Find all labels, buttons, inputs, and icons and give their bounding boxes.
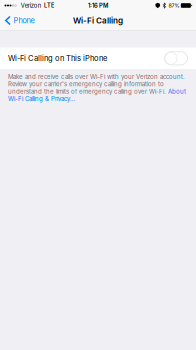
staticText: Wi-Fi Calling on This iPhone	[8, 54, 107, 63]
staticText: 87%	[168, 2, 179, 9]
button[interactable]: Wi-Fi Calling on This iPhone	[0, 47, 196, 69]
staticText: LTE	[44, 2, 54, 9]
staticText: Make and receive calls over Wi-Fi with y…	[8, 73, 186, 102]
staticText: 1:16 PM	[88, 2, 108, 9]
staticText: Wi-Fi Calling	[73, 16, 123, 25]
staticText: Verizon	[21, 2, 41, 9]
button[interactable]: Phone	[0, 11, 41, 30]
staticText: Phone	[14, 16, 35, 25]
